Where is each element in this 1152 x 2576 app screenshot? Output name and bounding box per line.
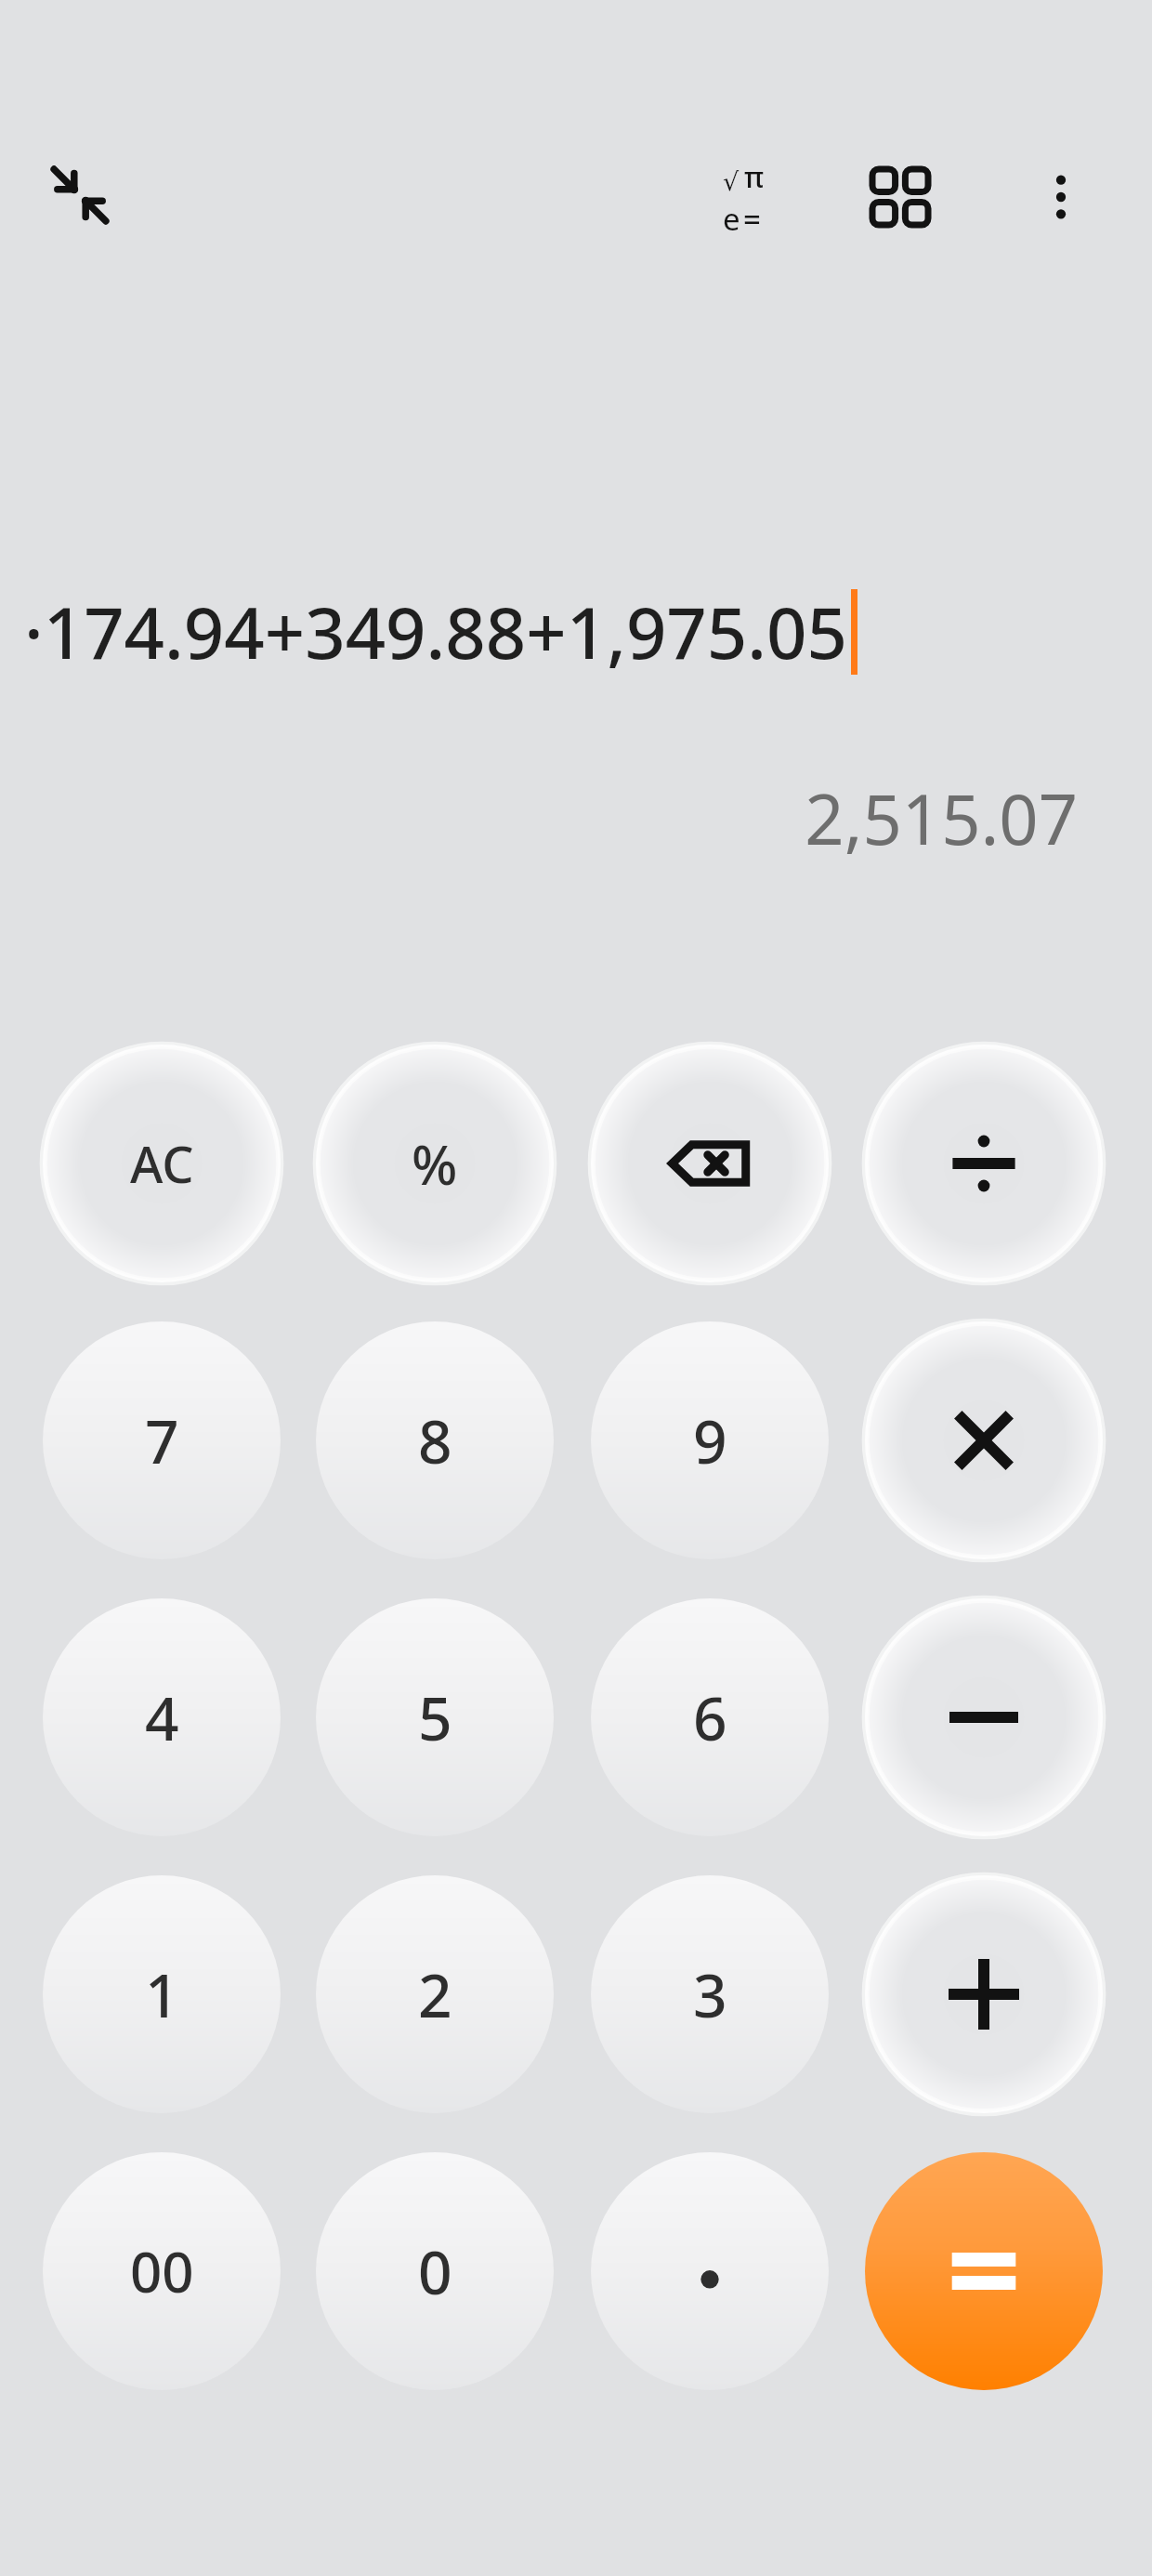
button[interactable]: Multiply	[841, 1297, 1127, 1584]
button[interactable]: 6	[567, 1574, 853, 1860]
button[interactable]: Backspace	[567, 1020, 853, 1307]
button[interactable]: Decimal point	[567, 2128, 853, 2414]
staticText: √	[723, 167, 740, 196]
button[interactable]: 9	[567, 1297, 853, 1584]
button[interactable]: Divide	[841, 1020, 1127, 1307]
button[interactable]: Equals	[841, 2128, 1127, 2414]
button[interactable]: 00	[19, 2128, 305, 2414]
button[interactable]: 4	[19, 1574, 305, 1860]
staticText: AC	[130, 1129, 194, 1198]
staticText: 9	[693, 1400, 727, 1481]
staticText: 0	[418, 2231, 452, 2312]
staticText: 00	[130, 2233, 194, 2309]
staticText: 6	[693, 1677, 727, 1758]
button[interactable]: History	[852, 149, 949, 245]
button[interactable]: 8	[292, 1297, 578, 1584]
button[interactable]: 2	[292, 1851, 578, 2137]
button[interactable]: Plus	[841, 1851, 1127, 2137]
staticText: 5	[418, 1677, 452, 1758]
staticText: ·174.94+349.88+1,975.05	[24, 584, 847, 680]
staticText: 8	[418, 1400, 452, 1481]
button[interactable]: 3	[567, 1851, 853, 2137]
staticText: 4	[145, 1677, 179, 1758]
button[interactable]: Collapse	[33, 149, 126, 242]
button[interactable]: More options	[1013, 149, 1109, 245]
button[interactable]: Minus	[841, 1574, 1127, 1860]
staticText: π	[744, 157, 765, 196]
button[interactable]: 7	[19, 1297, 305, 1584]
staticText: =	[743, 198, 761, 240]
staticText: %	[412, 1127, 458, 1201]
button[interactable]: AC	[19, 1020, 305, 1307]
button[interactable]: Percent	[292, 1020, 578, 1307]
button[interactable]: 0	[292, 2128, 578, 2414]
button[interactable]: 1	[19, 1851, 305, 2137]
staticText: 2	[418, 1954, 452, 2035]
staticText: 2,515.07	[0, 771, 1078, 865]
staticText: e	[723, 198, 740, 240]
staticText: 7	[145, 1400, 179, 1481]
staticText: 3	[693, 1954, 727, 2035]
staticText: 1	[145, 1954, 179, 2035]
button[interactable]: Scientific calculator	[692, 147, 794, 249]
button[interactable]: 5	[292, 1574, 578, 1860]
